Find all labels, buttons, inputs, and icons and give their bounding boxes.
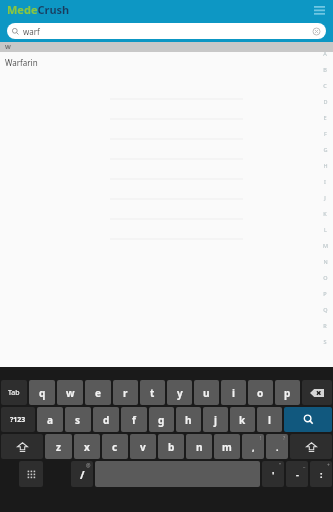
staticText: ": [279, 462, 282, 469]
button[interactable]: Alphabet index: [317, 42, 333, 367]
button[interactable]: p: [275, 380, 300, 405]
staticText: z: [56, 440, 61, 454]
staticText: f: [132, 413, 136, 427]
staticText: m: [222, 440, 232, 454]
staticText: p: [284, 386, 291, 400]
staticText: j: [214, 413, 217, 427]
button[interactable]: z: [45, 434, 72, 459]
staticText: Tab: [8, 388, 20, 398]
button[interactable]: ': [262, 461, 284, 487]
staticText: @: [86, 462, 91, 469]
button[interactable]: t: [140, 380, 165, 405]
button[interactable]: j: [203, 407, 228, 432]
staticText: n: [196, 440, 203, 454]
staticText: b: [168, 440, 175, 454]
button[interactable]: -: [286, 461, 308, 487]
staticText: L: [324, 226, 327, 233]
button[interactable]: Tab: [1, 380, 27, 405]
button[interactable]: y: [167, 380, 192, 405]
button[interactable]: W: [0, 42, 333, 52]
staticText: /: [80, 467, 85, 482]
button[interactable]: k: [230, 407, 255, 432]
staticText: W: [5, 43, 11, 51]
staticText: h: [185, 413, 192, 427]
button[interactable]: r: [113, 380, 138, 405]
button[interactable]: q: [29, 380, 55, 405]
button[interactable]: Change keyboard: [19, 461, 43, 487]
button[interactable]: w: [57, 380, 83, 405]
staticText: E: [323, 114, 327, 121]
staticText: K: [323, 210, 327, 217]
button[interactable]: warf: [7, 23, 326, 39]
button[interactable]: d: [93, 407, 119, 432]
staticText: Q: [323, 306, 328, 313]
button[interactable]: h: [176, 407, 201, 432]
button[interactable]: Shift: [1, 434, 43, 459]
button[interactable]: m: [214, 434, 240, 459]
staticText: I: [324, 178, 326, 185]
button[interactable]: x: [74, 434, 100, 459]
button[interactable]: Clear search: [312, 27, 321, 36]
staticText: N: [323, 258, 328, 265]
button[interactable]: l: [257, 407, 282, 432]
button[interactable]: v: [130, 434, 156, 459]
staticText: R: [323, 322, 327, 329]
staticText: r: [123, 386, 128, 400]
staticText: J: [324, 194, 326, 201]
staticText: .: [276, 441, 279, 453]
button[interactable]: c: [102, 434, 128, 459]
staticText: ?: [283, 435, 286, 442]
staticText: P: [323, 290, 327, 297]
button[interactable]: u: [194, 380, 219, 405]
button[interactable]: :: [310, 461, 332, 487]
button[interactable]: .: [266, 434, 288, 459]
button[interactable]: Search: [284, 407, 332, 432]
button[interactable]: ,: [242, 434, 264, 459]
staticText: F: [324, 130, 327, 137]
button[interactable]: g: [149, 407, 174, 432]
staticText: o: [257, 386, 264, 400]
staticText: e: [95, 386, 101, 400]
staticText: ?123: [10, 415, 26, 425]
button[interactable]: f: [121, 407, 147, 432]
staticText: l: [268, 413, 271, 427]
button[interactable]: /: [71, 461, 93, 487]
staticText: a: [47, 413, 53, 427]
staticText: i: [232, 386, 235, 400]
staticText: w: [66, 386, 75, 400]
staticText: C: [323, 82, 327, 89]
staticText: -: [296, 468, 299, 480]
button[interactable]: b: [158, 434, 184, 459]
button[interactable]: e: [85, 380, 111, 405]
staticText: k: [239, 413, 246, 427]
staticText: G: [323, 146, 328, 153]
button[interactable]: Menu: [310, 1, 328, 19]
staticText: _: [303, 462, 306, 469]
staticText: c: [112, 440, 118, 454]
button[interactable]: i: [221, 380, 246, 405]
staticText: S: [323, 338, 327, 345]
button[interactable]: Warfarin: [0, 52, 333, 72]
button[interactable]: n: [186, 434, 212, 459]
staticText: warf: [23, 26, 312, 37]
staticText: ': [272, 468, 275, 480]
staticText: x: [84, 440, 90, 454]
button[interactable]: Backspace: [302, 380, 332, 405]
staticText: s: [75, 413, 81, 427]
button[interactable]: ?123: [1, 407, 35, 432]
staticText: D: [323, 98, 328, 105]
button[interactable]: s: [65, 407, 91, 432]
staticText: d: [103, 413, 110, 427]
button[interactable]: a: [37, 407, 63, 432]
button[interactable]: o: [248, 380, 273, 405]
staticText: v: [140, 440, 146, 454]
staticText: y: [177, 386, 183, 400]
staticText: B: [323, 66, 327, 73]
button[interactable]: Shift: [290, 434, 332, 459]
staticText: ,: [252, 441, 255, 453]
staticText: A: [323, 50, 327, 57]
staticText: u: [203, 386, 210, 400]
staticText: MedeCrush: [7, 2, 70, 17]
staticText: O: [323, 274, 328, 281]
